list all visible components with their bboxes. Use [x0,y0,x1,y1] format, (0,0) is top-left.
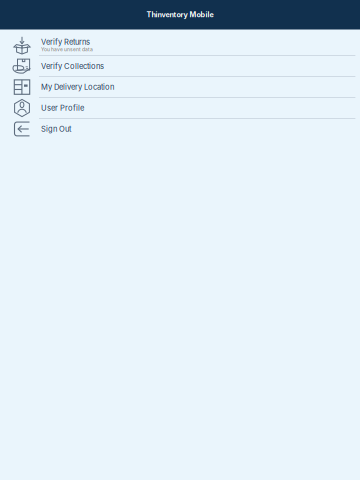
staticText: Verify Collections [41,61,104,71]
staticText: Thinventory Mobile [146,10,213,19]
staticText: My Delivery Location [41,82,114,92]
button[interactable]: Sign Out [0,119,360,140]
button[interactable]: Verify Returns [0,29,360,56]
staticText: You have unsent data [41,46,93,52]
button[interactable]: My Delivery Location [0,77,360,98]
staticText: Sign Out [41,124,71,134]
staticText: User Profile [41,103,84,113]
staticText: Verify Returns [41,37,90,46]
button[interactable]: User Profile [0,98,360,119]
button[interactable]: Verify Collections [0,56,360,77]
